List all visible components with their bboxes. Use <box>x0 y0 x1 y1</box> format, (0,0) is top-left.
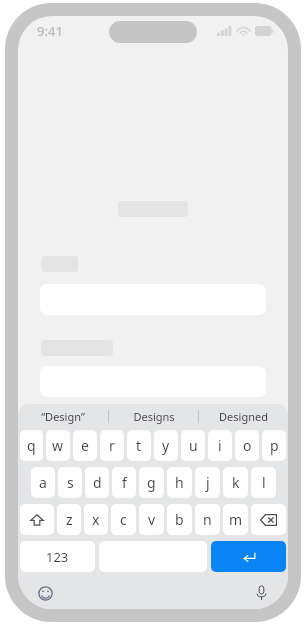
button[interactable]: x <box>84 504 108 535</box>
button[interactable]: Emoji <box>34 582 56 604</box>
staticText: f <box>122 473 127 492</box>
button[interactable]: v <box>139 504 164 535</box>
button[interactable]: Return <box>211 541 286 572</box>
staticText: Designed <box>219 409 268 424</box>
staticText: l <box>262 473 266 492</box>
button[interactable]: n <box>195 504 220 535</box>
button[interactable]: y <box>154 430 178 461</box>
staticText: c <box>120 510 127 529</box>
button[interactable]: Dictate <box>250 582 272 604</box>
staticText: k <box>232 473 240 492</box>
staticText: r <box>109 436 115 455</box>
button[interactable]: g <box>139 467 164 498</box>
staticText: o <box>243 436 252 455</box>
staticText: v <box>148 510 156 529</box>
button[interactable]: p <box>262 430 286 461</box>
button[interactable]: Shift <box>20 504 54 535</box>
staticText: d <box>93 473 102 492</box>
button[interactable]: q <box>20 430 43 461</box>
staticText: x <box>92 510 100 529</box>
staticText: e <box>81 436 89 455</box>
button[interactable]: i <box>208 430 232 461</box>
button[interactable]: l <box>251 467 276 498</box>
button[interactable]: r <box>100 430 124 461</box>
button[interactable]: w <box>46 430 70 461</box>
staticText: j <box>206 473 210 492</box>
button[interactable]: h <box>167 467 192 498</box>
button[interactable]: t <box>127 430 151 461</box>
staticText: p <box>270 436 279 455</box>
staticText: h <box>175 473 184 492</box>
staticText: 123 <box>46 548 69 566</box>
staticText: “Design” <box>41 409 85 424</box>
staticText: n <box>203 510 212 529</box>
button[interactable]: k <box>223 467 248 498</box>
staticText: q <box>27 436 36 455</box>
button[interactable]: f <box>112 467 136 498</box>
button[interactable]: c <box>111 504 136 535</box>
staticText: y <box>162 436 170 455</box>
staticText: b <box>175 510 184 529</box>
staticText: t <box>136 436 142 455</box>
staticText: s <box>67 473 74 492</box>
button[interactable]: b <box>167 504 192 535</box>
button[interactable]: a <box>31 467 55 498</box>
staticText: a <box>39 473 47 492</box>
button[interactable]: m <box>223 504 248 535</box>
staticText: 9:41 <box>37 22 63 40</box>
staticText: g <box>147 473 156 492</box>
button[interactable]: j <box>195 467 220 498</box>
staticText: i <box>218 436 222 455</box>
button[interactable]: o <box>235 430 259 461</box>
button[interactable]: e <box>73 430 97 461</box>
button[interactable]: d <box>85 467 109 498</box>
button[interactable]: Backspace <box>251 504 286 535</box>
staticText: u <box>189 436 198 455</box>
button[interactable]: z <box>57 504 81 535</box>
staticText: z <box>66 510 73 529</box>
button[interactable]: Designed <box>199 404 288 428</box>
button[interactable]: “Design” <box>18 404 108 428</box>
button[interactable]: Designs <box>109 404 198 428</box>
button[interactable]: u <box>181 430 205 461</box>
staticText: m <box>229 510 243 529</box>
staticText: w <box>52 436 64 455</box>
staticText: Designs <box>133 409 175 424</box>
button[interactable]: 123 <box>20 541 95 572</box>
button[interactable]: s <box>58 467 82 498</box>
